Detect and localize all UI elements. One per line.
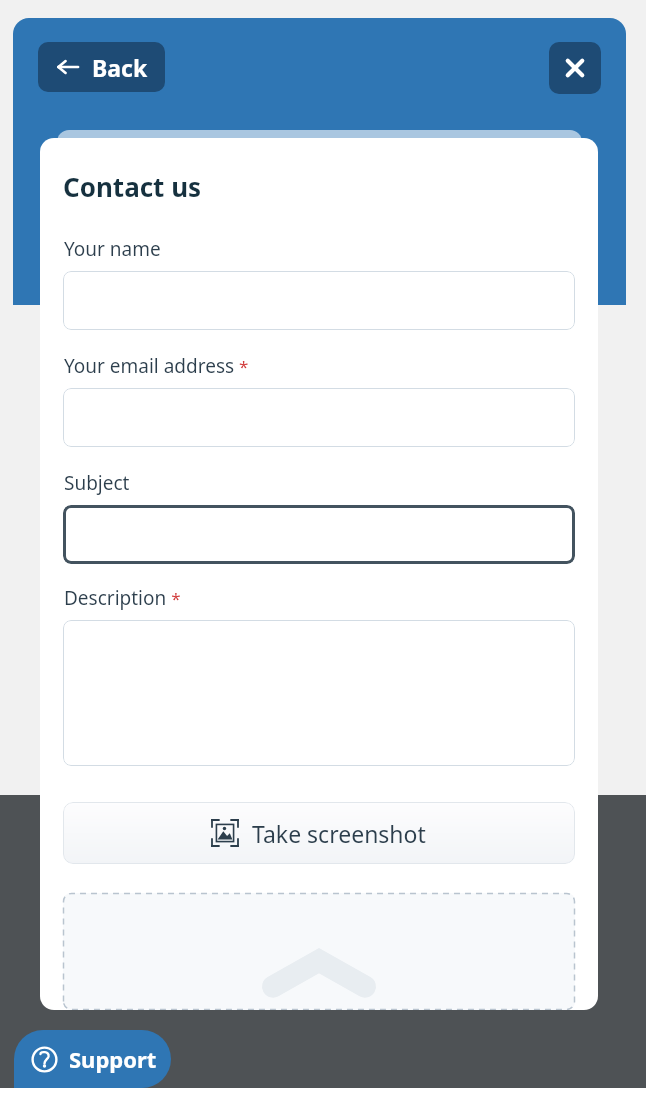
staticText: Take screenshot	[252, 818, 426, 849]
button[interactable]	[63, 505, 575, 564]
button[interactable]: Close	[549, 42, 601, 94]
button[interactable]	[63, 271, 575, 330]
button[interactable]	[63, 893, 575, 1010]
button[interactable]	[63, 620, 575, 766]
staticText: Back	[92, 52, 148, 83]
button[interactable]: Back	[38, 42, 165, 92]
staticText: Subject	[64, 470, 130, 496]
staticText: Contact us	[63, 169, 202, 204]
button[interactable]	[63, 388, 575, 447]
staticText: Your email address *	[64, 353, 249, 379]
staticText: Support	[69, 1044, 157, 1074]
staticText: Description *	[64, 585, 181, 611]
button[interactable]: Take screenshot	[63, 802, 575, 864]
staticText: Your name	[64, 236, 161, 262]
button[interactable]: Support	[14, 1030, 171, 1088]
